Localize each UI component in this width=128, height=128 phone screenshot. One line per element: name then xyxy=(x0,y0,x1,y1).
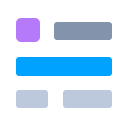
button[interactable]: Secondary action xyxy=(16,90,48,108)
button[interactable]: Tertiary action xyxy=(63,90,112,108)
button[interactable]: Primary action xyxy=(16,57,112,76)
button[interactable]: App icon xyxy=(16,18,40,42)
